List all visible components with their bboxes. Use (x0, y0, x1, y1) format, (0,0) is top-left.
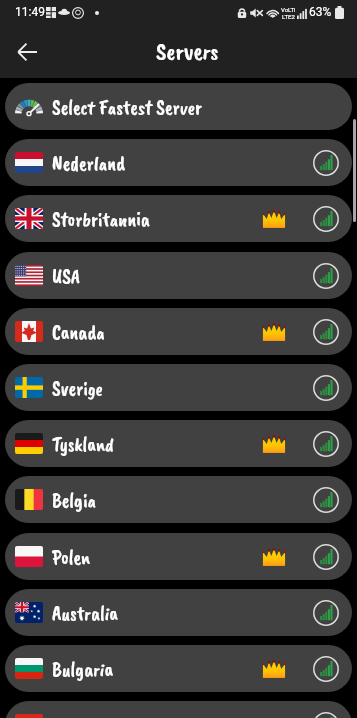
staticText: Sverige (52, 376, 103, 401)
staticText: Belgia (52, 488, 96, 513)
staticText: Australia (52, 601, 118, 626)
staticText: LTE2 (282, 13, 295, 20)
button[interactable]: Canada (5, 308, 352, 355)
staticText: 11:49 (15, 5, 45, 19)
staticText: Polen (52, 545, 90, 570)
button[interactable]: Back (10, 35, 44, 69)
button[interactable]: Sveits (5, 701, 352, 718)
staticText: Bulgaria (52, 657, 113, 682)
staticText: Nederland (52, 151, 125, 176)
button[interactable]: Nederland (5, 139, 352, 186)
staticText: Canada (52, 320, 105, 345)
staticText: VoLTE (281, 6, 295, 13)
button[interactable]: Australia (5, 589, 352, 636)
button[interactable]: USA (5, 252, 352, 299)
staticText: 63% (309, 5, 332, 19)
staticText: Tyskland (52, 432, 114, 457)
button[interactable]: Select Fastest Server (5, 83, 352, 130)
button[interactable]: Polen (5, 533, 352, 580)
button[interactable]: Bulgaria (5, 645, 352, 692)
button[interactable]: Tyskland (5, 420, 352, 467)
button[interactable]: Belgia (5, 476, 352, 523)
staticText: Servers (156, 36, 219, 66)
staticText: USA (52, 264, 81, 289)
button[interactable]: Sverige (5, 364, 352, 411)
staticText: Storbritannia (52, 207, 150, 232)
staticText: Select Fastest Server (52, 95, 202, 120)
button[interactable]: Storbritannia (5, 195, 352, 242)
